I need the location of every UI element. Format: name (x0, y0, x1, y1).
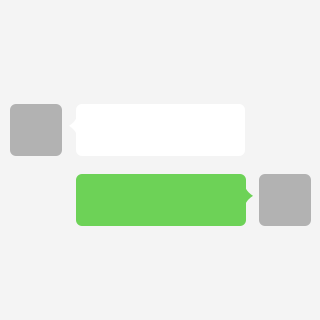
button[interactable]: Sender avatar (10, 104, 62, 156)
button[interactable]: Sent message (76, 174, 253, 226)
button[interactable]: Your avatar (259, 174, 311, 226)
